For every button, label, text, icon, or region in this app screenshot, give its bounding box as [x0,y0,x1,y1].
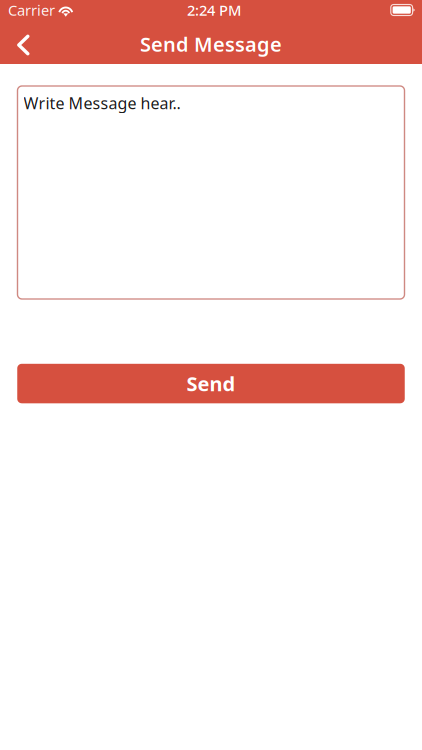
button[interactable]: Send [17,364,405,403]
staticText: 2:24 PM [187,0,241,20]
staticText: Write Message hear.. [23,92,180,114]
button[interactable]: Write Message hear.. [17,86,404,299]
staticText: Carrier [8,0,55,20]
button[interactable]: Back [0,24,46,66]
staticText: Send Message [140,31,282,57]
staticText: Send [186,370,235,397]
